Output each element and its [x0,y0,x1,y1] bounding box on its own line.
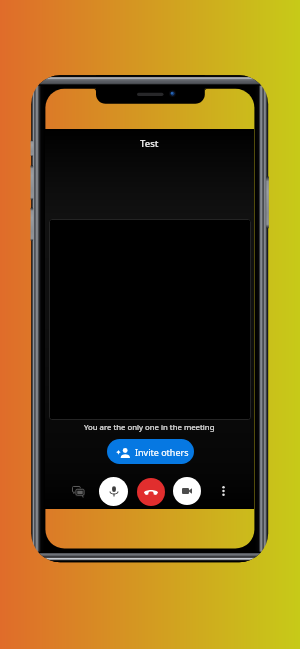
button[interactable]: Mute microphone [99,477,128,506]
staticText: Invite others [135,446,189,458]
staticText: Test [140,137,159,150]
button[interactable]: Turn off camera [173,477,201,505]
staticText: You are the only one in the meeting [84,422,215,433]
button[interactable]: More options [214,482,232,500]
button[interactable]: Invite others [107,439,194,464]
button[interactable]: Chat [67,480,89,502]
button[interactable]: Leave call [137,478,165,506]
